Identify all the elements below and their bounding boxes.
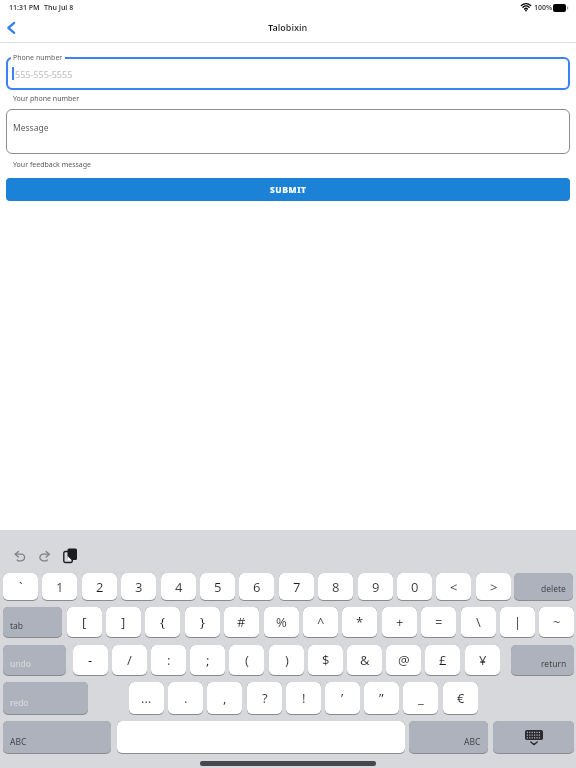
button[interactable]: < xyxy=(436,573,471,601)
button[interactable]: # xyxy=(224,607,259,638)
button[interactable]: 6 xyxy=(239,573,274,601)
staticText: 11:31 PM xyxy=(9,3,40,13)
staticText: Your feedback message xyxy=(13,160,92,170)
button[interactable]: delete xyxy=(514,573,573,601)
staticText: 0 xyxy=(411,578,419,596)
staticText: 100% xyxy=(534,3,553,13)
button[interactable]: } xyxy=(185,607,220,638)
button[interactable]: _ xyxy=(403,682,438,715)
button[interactable] xyxy=(7,22,16,34)
button[interactable] xyxy=(14,551,26,562)
staticText: + xyxy=(396,613,404,631)
button[interactable]: 555-555-5555 xyxy=(6,57,570,90)
button[interactable]: ” xyxy=(364,682,399,715)
button[interactable]: ] xyxy=(106,607,141,638)
button[interactable]: SUBMIT xyxy=(6,178,570,201)
button[interactable]: 4 xyxy=(161,573,196,601)
button[interactable]: ! xyxy=(286,682,321,715)
button[interactable]: * xyxy=(342,607,377,638)
button[interactable]: tab xyxy=(3,607,62,638)
staticText: . xyxy=(184,689,188,707)
staticText: } xyxy=(200,613,205,631)
staticText: tab xyxy=(10,620,24,632)
button[interactable]: 5 xyxy=(200,573,235,601)
staticText: 1 xyxy=(56,578,64,596)
button[interactable]: : xyxy=(151,645,186,676)
button[interactable]: | xyxy=(500,607,535,638)
button[interactable]: € xyxy=(443,682,478,715)
staticText: 6 xyxy=(253,578,261,596)
staticText: SUBMIT xyxy=(270,184,307,196)
staticText: 555-555-5555 xyxy=(15,68,73,80)
button[interactable]: / xyxy=(112,645,147,676)
staticText: [ xyxy=(82,613,87,631)
button[interactable]: & xyxy=(347,645,382,676)
button[interactable]: 3 xyxy=(121,573,156,601)
button[interactable]: ABC xyxy=(409,721,488,754)
button[interactable]: return xyxy=(511,645,574,676)
button[interactable]: redo xyxy=(3,682,88,715)
staticText: Message xyxy=(13,122,49,134)
button[interactable]: @ xyxy=(386,645,421,676)
button[interactable] xyxy=(493,721,574,754)
button[interactable]: ? xyxy=(247,682,282,715)
button[interactable] xyxy=(63,548,78,563)
button[interactable]: , xyxy=(207,682,242,715)
staticText: ABC xyxy=(10,736,27,748)
staticText: Talobixin xyxy=(268,21,308,33)
button[interactable]: { xyxy=(145,607,180,638)
button[interactable]: ’ xyxy=(325,682,360,715)
button[interactable] xyxy=(117,721,405,754)
button[interactable]: > xyxy=(476,573,511,601)
staticText: redo xyxy=(10,697,29,709)
button[interactable]: ABC xyxy=(3,721,111,754)
button[interactable]: £ xyxy=(425,645,460,676)
staticText: … xyxy=(141,689,152,707)
button[interactable]: 8 xyxy=(318,573,353,601)
staticText: return xyxy=(541,658,567,670)
staticText: * xyxy=(356,613,364,631)
button[interactable]: ¥ xyxy=(465,645,500,676)
button[interactable]: . xyxy=(168,682,203,715)
button[interactable]: … xyxy=(129,682,164,715)
button[interactable]: + xyxy=(382,607,417,638)
button[interactable]: ^ xyxy=(303,607,338,638)
button[interactable]: 2 xyxy=(82,573,117,601)
button[interactable]: Message xyxy=(6,109,570,154)
button[interactable]: 1 xyxy=(42,573,77,601)
button[interactable]: ~ xyxy=(539,607,574,638)
staticText: - xyxy=(88,651,93,669)
staticText: 7 xyxy=(293,578,301,596)
button[interactable] xyxy=(39,551,51,562)
staticText: ~ xyxy=(553,613,561,631)
staticText: _ xyxy=(418,689,424,707)
staticText: ^ xyxy=(317,613,325,631)
button[interactable]: % xyxy=(264,607,299,638)
staticText: : xyxy=(167,651,171,669)
staticText: 2 xyxy=(96,578,104,596)
staticText: ¥ xyxy=(479,651,487,669)
button[interactable]: 9 xyxy=(358,573,393,601)
staticText: ` xyxy=(19,578,23,596)
button[interactable]: undo xyxy=(3,645,66,676)
staticText: \ xyxy=(476,613,481,631)
button[interactable]: ` xyxy=(3,573,38,601)
button[interactable]: = xyxy=(421,607,456,638)
staticText: ] xyxy=(121,613,126,631)
button[interactable]: 7 xyxy=(279,573,314,601)
button[interactable]: 0 xyxy=(397,573,432,601)
button[interactable]: \ xyxy=(461,607,496,638)
button[interactable]: ; xyxy=(190,645,225,676)
staticText: Thu Jul 8 xyxy=(44,3,74,13)
staticText: ; xyxy=(206,651,210,669)
staticText: & xyxy=(360,651,370,669)
button[interactable]: - xyxy=(73,645,108,676)
staticText: % xyxy=(276,613,287,631)
staticText: ( xyxy=(245,651,249,669)
button[interactable]: [ xyxy=(67,607,102,638)
button[interactable]: ) xyxy=(269,645,304,676)
button[interactable]: ( xyxy=(229,645,264,676)
staticText: @ xyxy=(398,651,410,669)
staticText: ? xyxy=(262,689,268,707)
button[interactable]: $ xyxy=(308,645,343,676)
